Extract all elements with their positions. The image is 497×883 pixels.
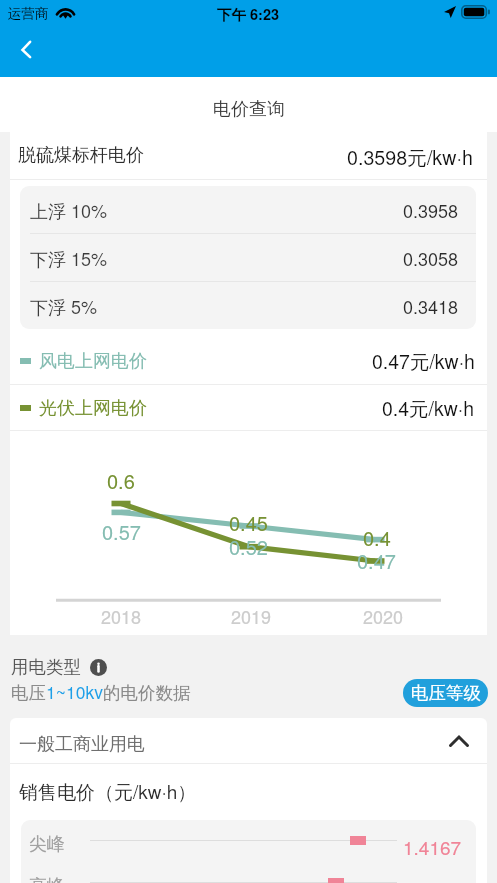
staticText: 电压等级 [411,682,481,704]
button[interactable]: Back [4,28,48,72]
staticText: 1.4167 [403,833,462,860]
staticText: 0.47元/kw·h [372,347,475,375]
staticText: 下浮 5% [30,293,98,319]
button[interactable]: 一般工商业用电 [10,718,487,764]
staticText: 0.3598元/kw·h [347,142,473,170]
staticText: 2018 [101,603,142,629]
staticText: 0.47 [357,546,396,575]
button[interactable]: 下浮 5% [30,282,459,329]
staticText: 下午 6:23 [217,4,280,25]
staticText: 2020 [363,603,404,629]
staticText: 2019 [231,603,272,629]
button[interactable]: 电压等级 [403,679,488,707]
staticText: 风电上网电价 [39,350,147,373]
staticText: 上浮 10% [30,197,108,223]
staticText: 0.3058 [403,245,459,271]
staticText: 用电类型 [11,656,81,678]
staticText: 0.57 [102,517,141,546]
staticText: 0.3418 [403,293,459,319]
staticText: 高峰 [29,875,65,883]
staticText: 运营商 [8,5,49,22]
staticText: 一般工商业用电 [19,733,145,756]
staticText: 下浮 15% [30,245,108,271]
staticText: 脱硫煤标杆电价 [18,144,144,167]
staticText: 电压1~10kv的电价数据 [11,679,191,704]
button[interactable]: 风电上网电价 [20,338,475,384]
staticText: 0.45 [229,508,268,537]
staticText: 0.4 [363,523,391,552]
staticText: 0.6 [107,466,135,495]
staticText: 光伏上网电价 [39,397,147,420]
button[interactable]: 光伏上网电价 [20,385,475,431]
staticText: 尖峰 [29,833,65,856]
staticText: 0.4元/kw·h [382,394,475,422]
button[interactable]: 上浮 10% [30,186,459,233]
button[interactable]: 下浮 15% [30,234,459,281]
button[interactable]: Info [90,659,107,676]
staticText: 0.52 [229,532,268,561]
staticText: 销售电价（元/kw·h） [19,777,197,804]
staticText: 0.3958 [403,197,459,223]
staticText: 电价查询 [213,98,285,121]
